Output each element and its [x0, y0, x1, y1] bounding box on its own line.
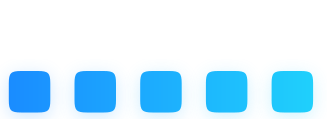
- button[interactable]: Colour swatch 2: [74, 71, 116, 112]
- button[interactable]: Colour swatch 5: [272, 71, 313, 112]
- button[interactable]: Colour swatch 1: [9, 71, 50, 112]
- button[interactable]: Colour swatch 3: [140, 71, 182, 112]
- button[interactable]: Colour swatch 4: [206, 71, 247, 112]
